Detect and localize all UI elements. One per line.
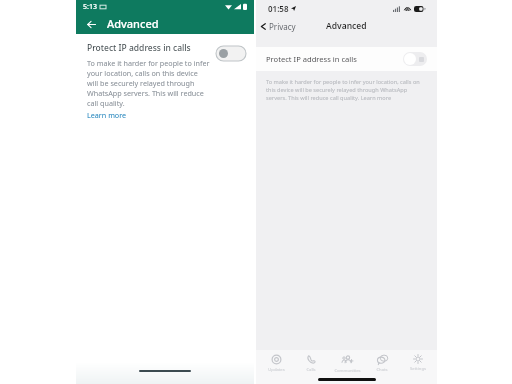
staticText: Communities [334,368,361,374]
button[interactable]: Privacy [260,21,296,32]
button[interactable]: Protect IP address in calls toggle [403,52,427,66]
staticText: Protect IP address in calls [87,42,191,54]
staticText: Chats [376,367,388,373]
staticText: Settings [410,366,426,372]
staticText: Advanced [326,20,367,32]
staticText: 01:58 [268,3,289,14]
button[interactable]: Chats [366,353,398,374]
staticText: Learn more [87,110,127,120]
staticText: Advanced [107,16,159,31]
button[interactable]: Communities [331,353,363,375]
staticText: To make it harder for people to infer yo… [87,58,210,108]
staticText: 5:13 [83,2,97,12]
button[interactable]: Calls [295,353,327,374]
button[interactable]: Protect IP address in calls [76,34,254,130]
button[interactable]: Protect IP address in calls [256,47,437,71]
staticText: Privacy [269,21,296,32]
staticText: Updates [268,367,285,373]
staticText: Calls [306,367,316,373]
button[interactable]: Updates [260,353,292,374]
button[interactable]: Protect IP address in calls toggle [216,44,246,62]
button[interactable]: Learn more [87,110,127,120]
button[interactable]: Back [82,15,100,33]
staticText: Protect IP address in calls [266,54,357,64]
button[interactable]: Settings [402,353,434,373]
staticText: To make it harder for people to infer yo… [266,78,427,102]
